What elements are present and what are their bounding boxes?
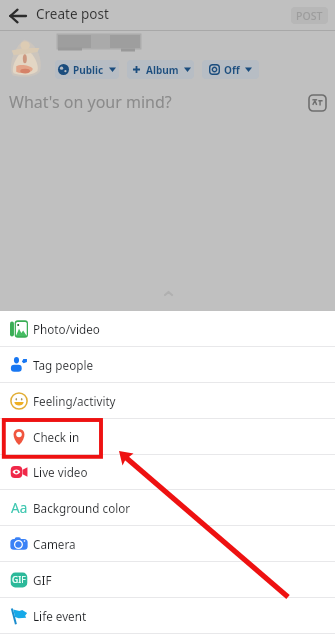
button[interactable]: Check in (0, 419, 335, 455)
button[interactable]: Photo/video (0, 311, 335, 347)
button[interactable]: GIF (0, 562, 335, 598)
staticText: Background color (33, 500, 131, 516)
button[interactable]: Text font (309, 95, 326, 111)
staticText: Off (224, 63, 240, 77)
staticText: GIF (33, 572, 52, 588)
button[interactable]: Feeling/activity (0, 383, 335, 419)
button[interactable]: Public (55, 60, 119, 79)
staticText: Tag people (33, 357, 93, 373)
staticText: Life event (33, 608, 87, 624)
staticText: Live video (33, 464, 88, 480)
staticText: What's on your mind? (9, 91, 172, 113)
button[interactable]: Back (0, 0, 34, 31)
button[interactable]: Camera (0, 526, 335, 562)
button[interactable]: Off (202, 60, 259, 79)
staticText: Feeling/activity (33, 393, 116, 409)
staticText: Aa (11, 499, 28, 517)
button[interactable]: Aa (0, 490, 335, 526)
staticText: Create post (36, 5, 109, 23)
staticText: POST (296, 9, 323, 23)
staticText: Camera (33, 536, 76, 552)
staticText: Public (73, 63, 104, 77)
button[interactable]: POST (291, 7, 328, 24)
staticText: Album (146, 63, 179, 77)
staticText: Check in (33, 429, 80, 445)
staticText: GIF (12, 574, 26, 586)
button[interactable]: Album (127, 60, 194, 79)
button[interactable]: Live video (0, 454, 335, 490)
button[interactable]: Life event (0, 598, 335, 634)
staticText: Photo/video (33, 321, 100, 337)
button[interactable]: Tag people (0, 347, 335, 383)
